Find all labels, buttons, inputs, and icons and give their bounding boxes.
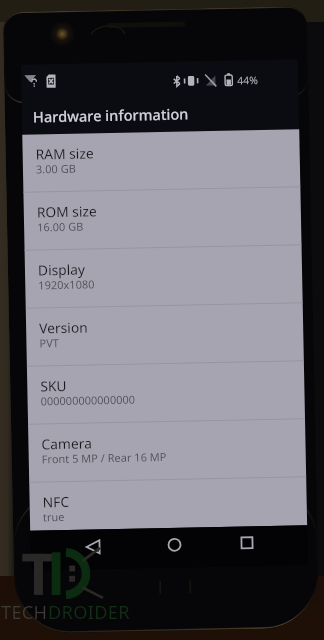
button[interactable]: ROM size [23, 187, 301, 250]
staticText: 44% [237, 73, 258, 87]
staticText: Display [38, 259, 86, 279]
staticText: Camera [41, 433, 93, 453]
button[interactable]: NFC [29, 477, 307, 531]
staticText: RAM size [35, 143, 94, 163]
staticText: Hardware information [33, 103, 189, 126]
button[interactable]: Home [163, 534, 186, 556]
staticText: 1920x1080 [38, 276, 95, 292]
button[interactable]: SKU [27, 361, 305, 424]
staticText: 000000000000000 [40, 391, 136, 408]
button[interactable]: Camera [28, 419, 306, 482]
staticText: 3.00 GB [36, 161, 76, 176]
button[interactable]: RAM size [22, 129, 300, 192]
button[interactable]: Display [25, 245, 303, 308]
staticText: Front 5 MP / Rear 16 MP [42, 449, 167, 466]
button[interactable]: Version [26, 303, 304, 366]
staticText: DROIDER [48, 600, 130, 625]
staticText: SKU [40, 376, 67, 395]
staticText: PVT [39, 335, 60, 350]
button[interactable]: Back [81, 535, 104, 558]
button[interactable]: Recents [235, 531, 258, 553]
staticText: 16.00 GB [37, 218, 84, 234]
staticText: TECH [1, 600, 48, 625]
staticText: NFC [42, 492, 70, 511]
staticText: ROM size [37, 201, 97, 221]
staticText: Version [39, 317, 88, 337]
staticText: true [43, 509, 65, 524]
